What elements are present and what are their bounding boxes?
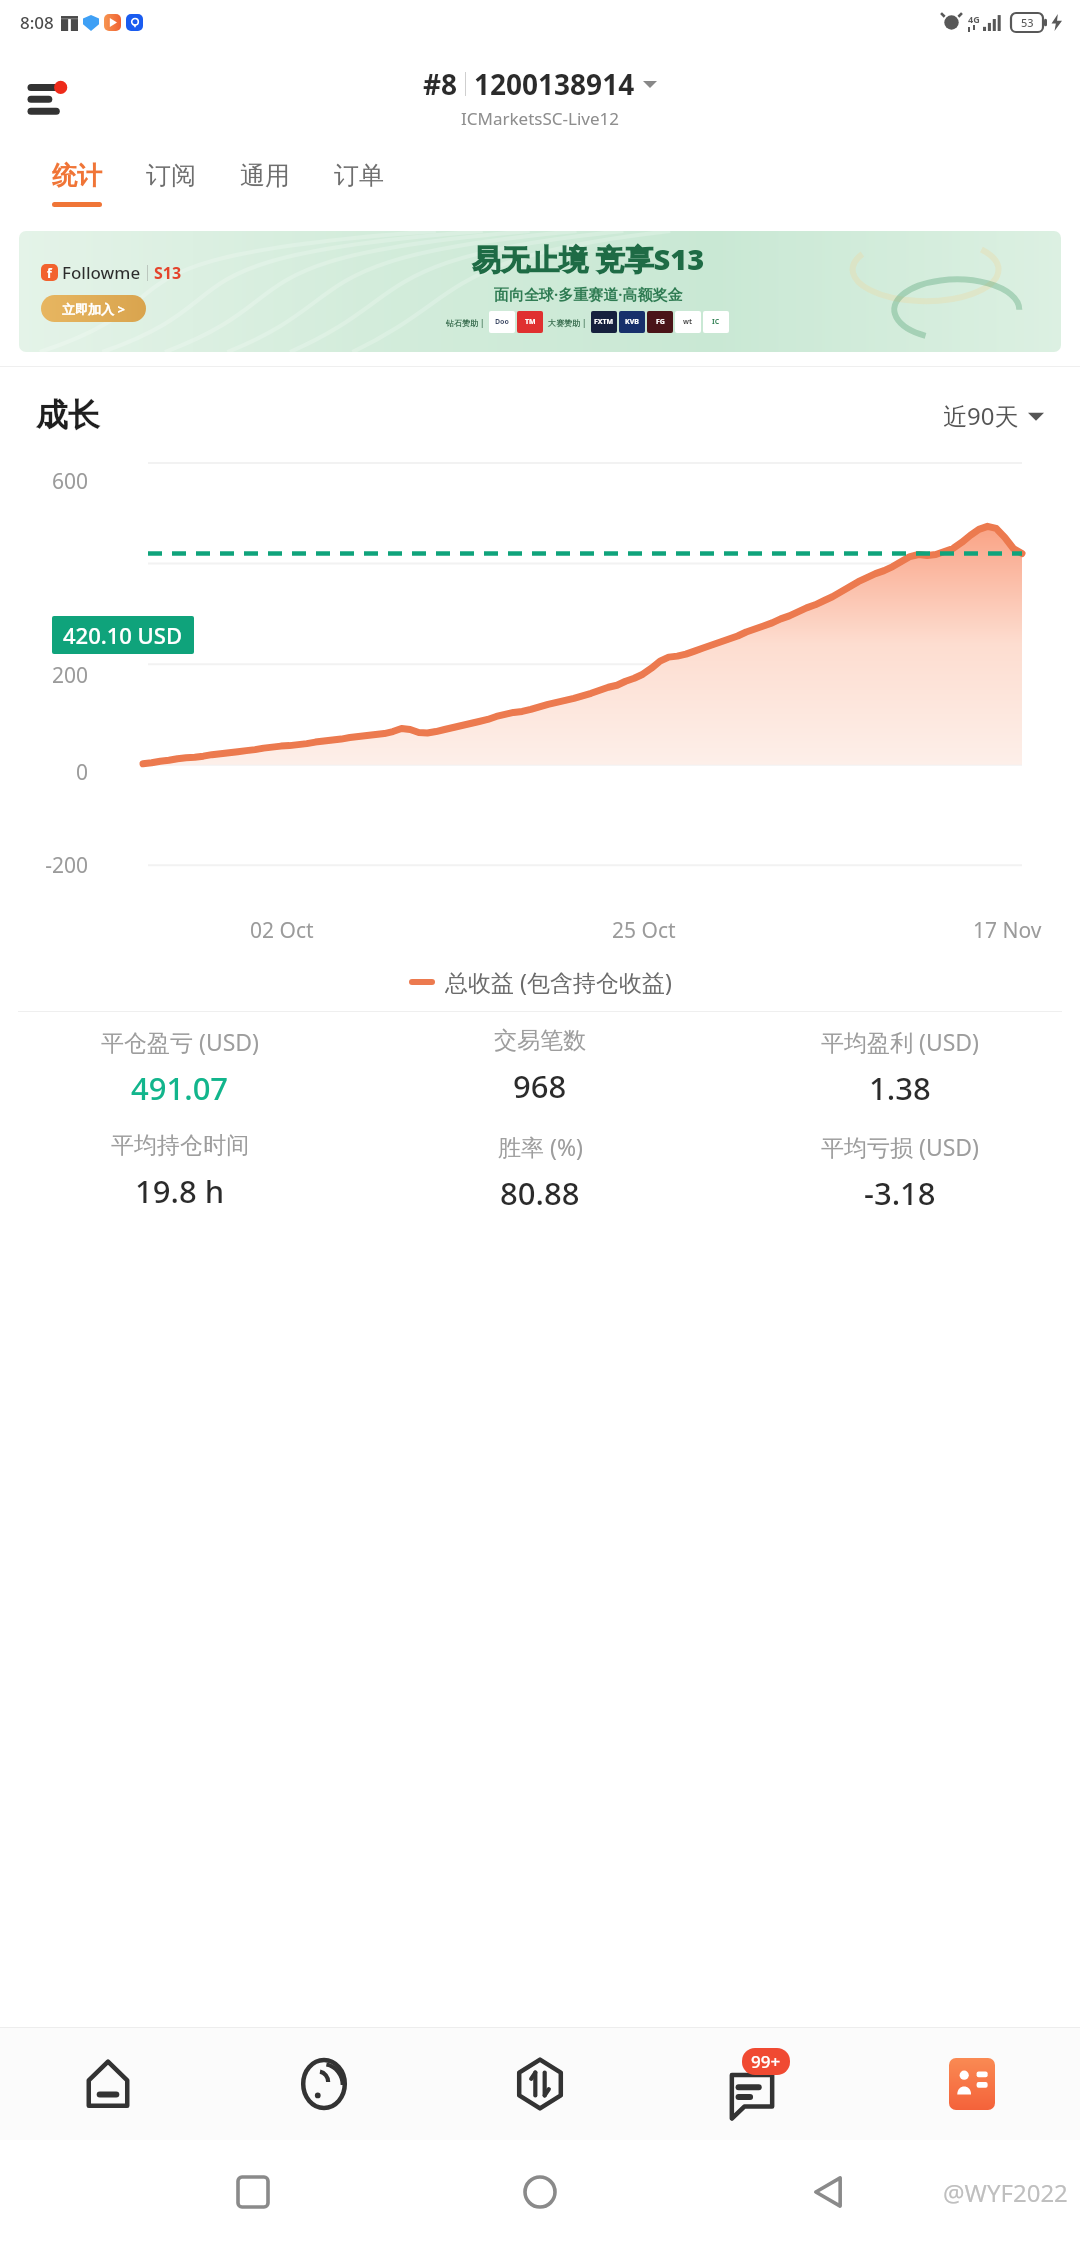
button[interactable]: Home xyxy=(0,2028,216,2140)
staticText: 420.10 USD xyxy=(63,620,183,650)
staticText: -200 xyxy=(18,851,88,880)
staticText: 统计 xyxy=(52,160,102,191)
staticText: 成长 xyxy=(36,395,100,435)
staticText: @WYF2022 xyxy=(943,2176,1068,2209)
staticText: 968 xyxy=(513,1065,567,1107)
button[interactable]: Messages xyxy=(648,2028,864,2140)
staticText: 4G xyxy=(968,13,980,25)
staticText: 1.38 xyxy=(869,1067,931,1109)
staticText: 平均持仓时间 xyxy=(111,1131,249,1160)
button[interactable]: 平均亏损 (USD) xyxy=(720,1131,1080,1214)
button[interactable]: Home xyxy=(505,2157,575,2227)
staticText: 19.8 h xyxy=(135,1170,225,1212)
staticText: #8 xyxy=(423,65,458,103)
staticText: 02 Oct xyxy=(250,916,314,945)
staticText: 8:08 xyxy=(20,11,54,34)
staticText: S13 xyxy=(154,262,182,284)
staticText: Doo xyxy=(495,317,509,327)
button[interactable]: 订阅 xyxy=(124,150,218,222)
button[interactable]: 平均持仓时间 xyxy=(0,1131,360,1212)
staticText: 200 xyxy=(18,661,88,690)
button[interactable]: 近90天 xyxy=(943,399,1044,432)
staticText: wt xyxy=(683,317,693,327)
button[interactable]: 胜率 (%) xyxy=(360,1131,720,1214)
staticText: TM xyxy=(525,317,536,327)
button[interactable]: 平仓盈亏 (USD) xyxy=(0,1026,360,1109)
staticText: f xyxy=(47,265,52,281)
staticText: 交易笔数 xyxy=(494,1026,586,1055)
button[interactable]: 交易笔数 xyxy=(360,1026,720,1107)
button[interactable]: 订单 xyxy=(312,150,406,222)
staticText: 总收益 (包含持仓收益) xyxy=(445,966,672,997)
staticText: 面向全球·多重赛道·高额奖金 xyxy=(494,284,683,304)
staticText: KVB xyxy=(625,317,639,327)
staticText: 80.88 xyxy=(500,1172,580,1214)
staticText: 99+ xyxy=(751,2050,781,2073)
staticText: 53 xyxy=(1021,15,1034,30)
staticText: 1200138914 xyxy=(474,65,635,103)
staticText: 491.07 xyxy=(131,1067,229,1109)
staticText: FG xyxy=(656,317,665,327)
staticText: 17 Nov xyxy=(973,916,1042,945)
button[interactable]: Recents xyxy=(218,2157,288,2227)
staticText: 易无止境 竞享S13 xyxy=(472,239,705,279)
staticText: 胜率 (%) xyxy=(498,1131,583,1162)
button[interactable]: 立即加入 > xyxy=(41,295,146,322)
staticText: 平均盈利 (USD) xyxy=(821,1026,980,1057)
staticText: 平仓盈亏 (USD) xyxy=(101,1026,260,1057)
button[interactable]: 统计 xyxy=(30,150,124,222)
staticText: FXTM xyxy=(594,317,614,327)
button[interactable]: Signals xyxy=(216,2028,432,2140)
staticText: 600 xyxy=(18,467,88,496)
button[interactable]: 通用 xyxy=(218,150,312,222)
staticText: 立即加入 > xyxy=(62,300,125,318)
button[interactable]: 平均盈利 (USD) xyxy=(720,1026,1080,1109)
staticText: 订阅 xyxy=(146,160,196,191)
staticText: 平均亏损 (USD) xyxy=(821,1131,980,1162)
staticText: 通用 xyxy=(240,160,290,191)
button[interactable]: Menu xyxy=(22,69,80,127)
staticText: IC xyxy=(712,317,720,327)
button[interactable]: Profile xyxy=(864,2028,1080,2140)
button[interactable]: f xyxy=(19,231,1061,352)
staticText: -3.18 xyxy=(864,1172,936,1214)
button[interactable]: Back xyxy=(793,2157,863,2227)
staticText: 25 Oct xyxy=(612,916,676,945)
staticText: 0 xyxy=(18,758,88,787)
staticText: 大赛赞助 | xyxy=(548,317,587,328)
staticText: 钻石赞助 | xyxy=(446,317,485,328)
staticText: ICMarketsSC-Live12 xyxy=(461,107,619,130)
staticText: Followme xyxy=(62,261,141,284)
staticText: 近90天 xyxy=(943,399,1019,432)
staticText: 订单 xyxy=(334,160,384,191)
button[interactable]: Trade xyxy=(432,2028,648,2140)
